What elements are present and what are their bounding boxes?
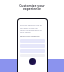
staticText: Customize your experience bbox=[19, 3, 45, 10]
staticText: Select your interests bbox=[20, 35, 40, 38]
button[interactable]: App logo bbox=[29, 58, 36, 65]
staticText: Pick the options that fit you best so we… bbox=[20, 24, 45, 33]
